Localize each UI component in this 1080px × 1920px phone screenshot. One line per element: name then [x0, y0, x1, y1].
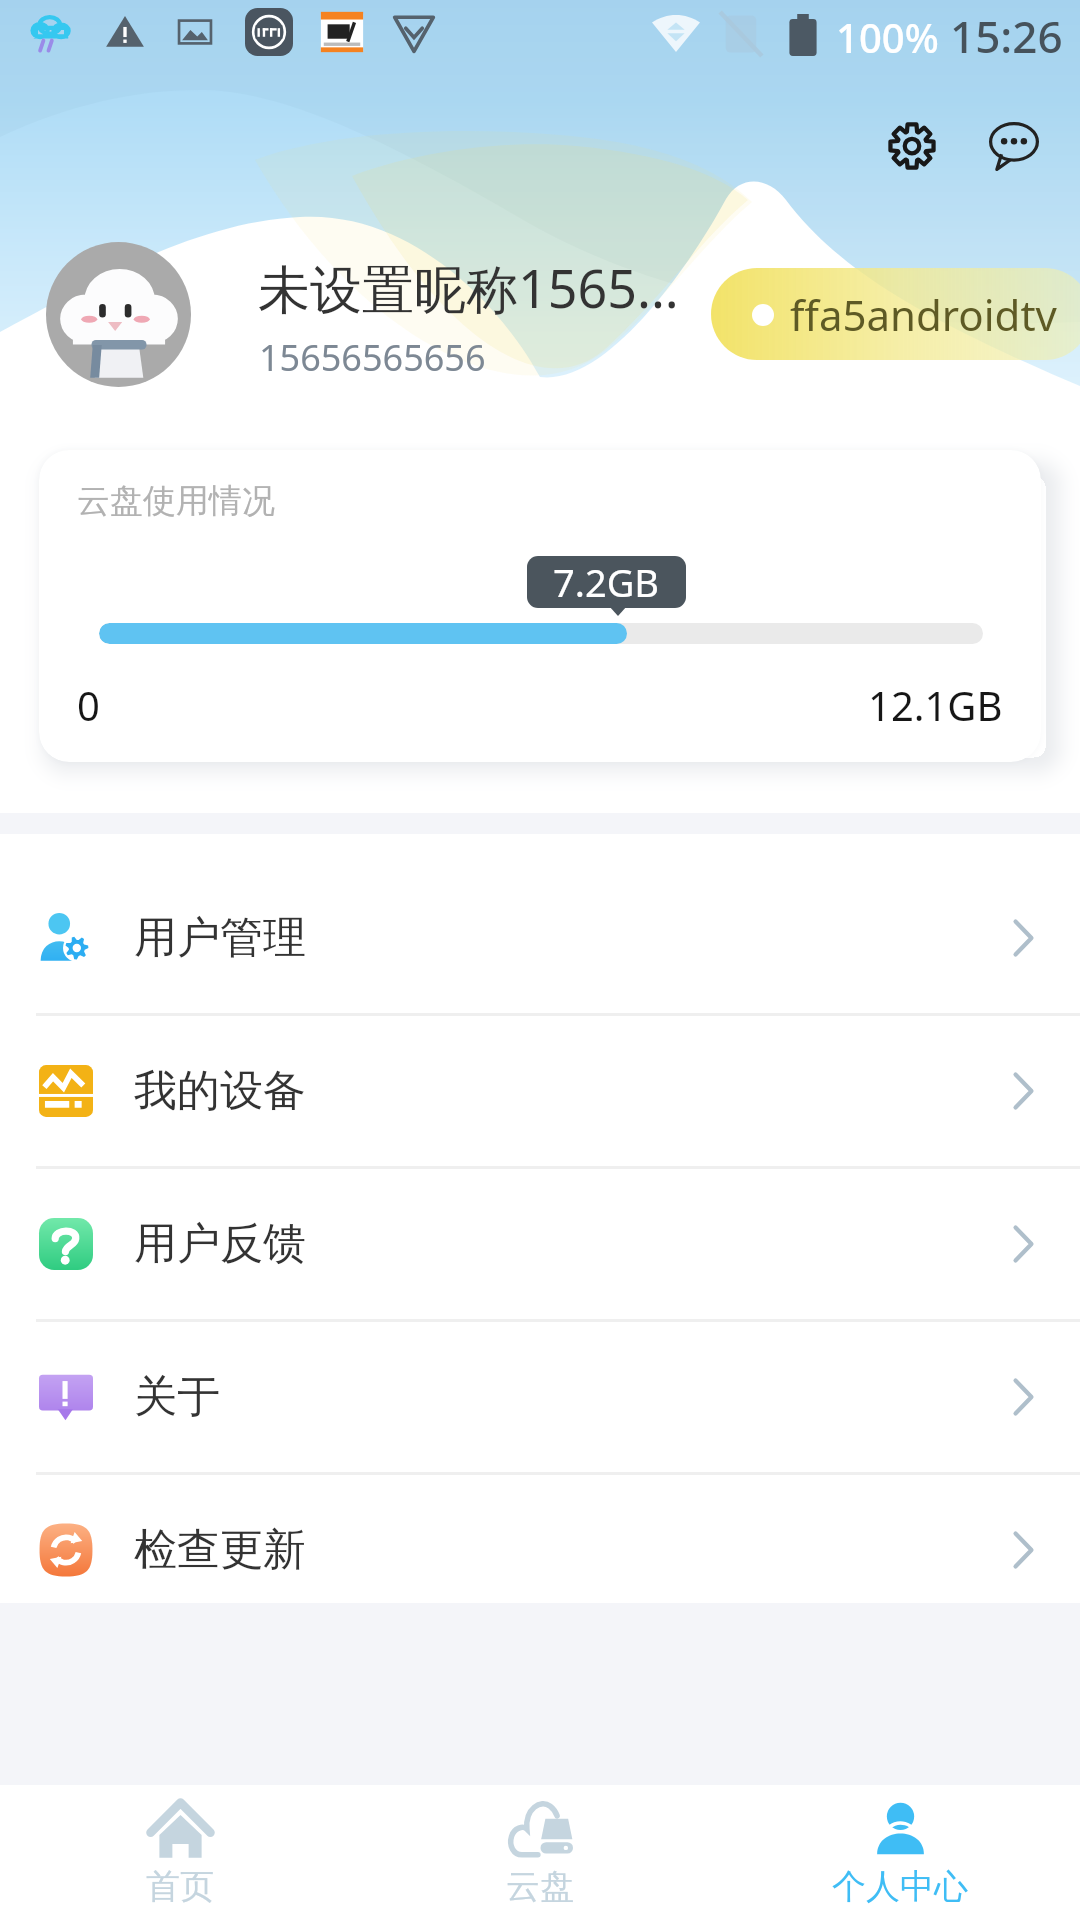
button[interactable]: 关于 — [0, 1322, 1080, 1475]
button[interactable]: 检查更新 — [0, 1475, 1080, 1603]
button[interactable]: 我的设备 — [0, 1016, 1080, 1169]
staticText: 首页 — [146, 1865, 214, 1908]
staticText: 7.2GB — [553, 556, 660, 608]
button[interactable]: Avatar — [46, 242, 191, 387]
staticText: 云盘 — [506, 1865, 574, 1908]
button[interactable]: ffa5androidtv — [711, 268, 1080, 360]
staticText: 云盘使用情况 — [77, 480, 275, 522]
button[interactable]: 云盘 — [360, 1785, 720, 1920]
button[interactable]: Messages — [972, 104, 1056, 188]
button[interactable]: 用户反馈 — [0, 1169, 1080, 1322]
staticText: 个人中心 — [832, 1865, 968, 1908]
staticText: 100% — [836, 10, 939, 64]
button[interactable]: Settings — [870, 104, 954, 188]
staticText: 我的设备 — [134, 1064, 306, 1118]
staticText: 未设置昵称1565... — [258, 252, 679, 323]
staticText: 12.1GB — [868, 678, 1003, 732]
staticText: ffa5androidtv — [790, 286, 1057, 343]
staticText: 检查更新 — [134, 1523, 306, 1577]
staticText: 用户管理 — [134, 911, 306, 965]
button[interactable]: 个人中心 — [720, 1785, 1080, 1920]
button[interactable]: 首页 — [0, 1785, 360, 1920]
staticText: 15:26 — [950, 6, 1063, 66]
staticText: 关于 — [134, 1370, 220, 1424]
staticText: 0 — [77, 678, 100, 732]
button[interactable]: 用户管理 — [0, 863, 1080, 1016]
staticText: 15656565656 — [259, 333, 486, 382]
staticText: 用户反馈 — [134, 1217, 306, 1271]
